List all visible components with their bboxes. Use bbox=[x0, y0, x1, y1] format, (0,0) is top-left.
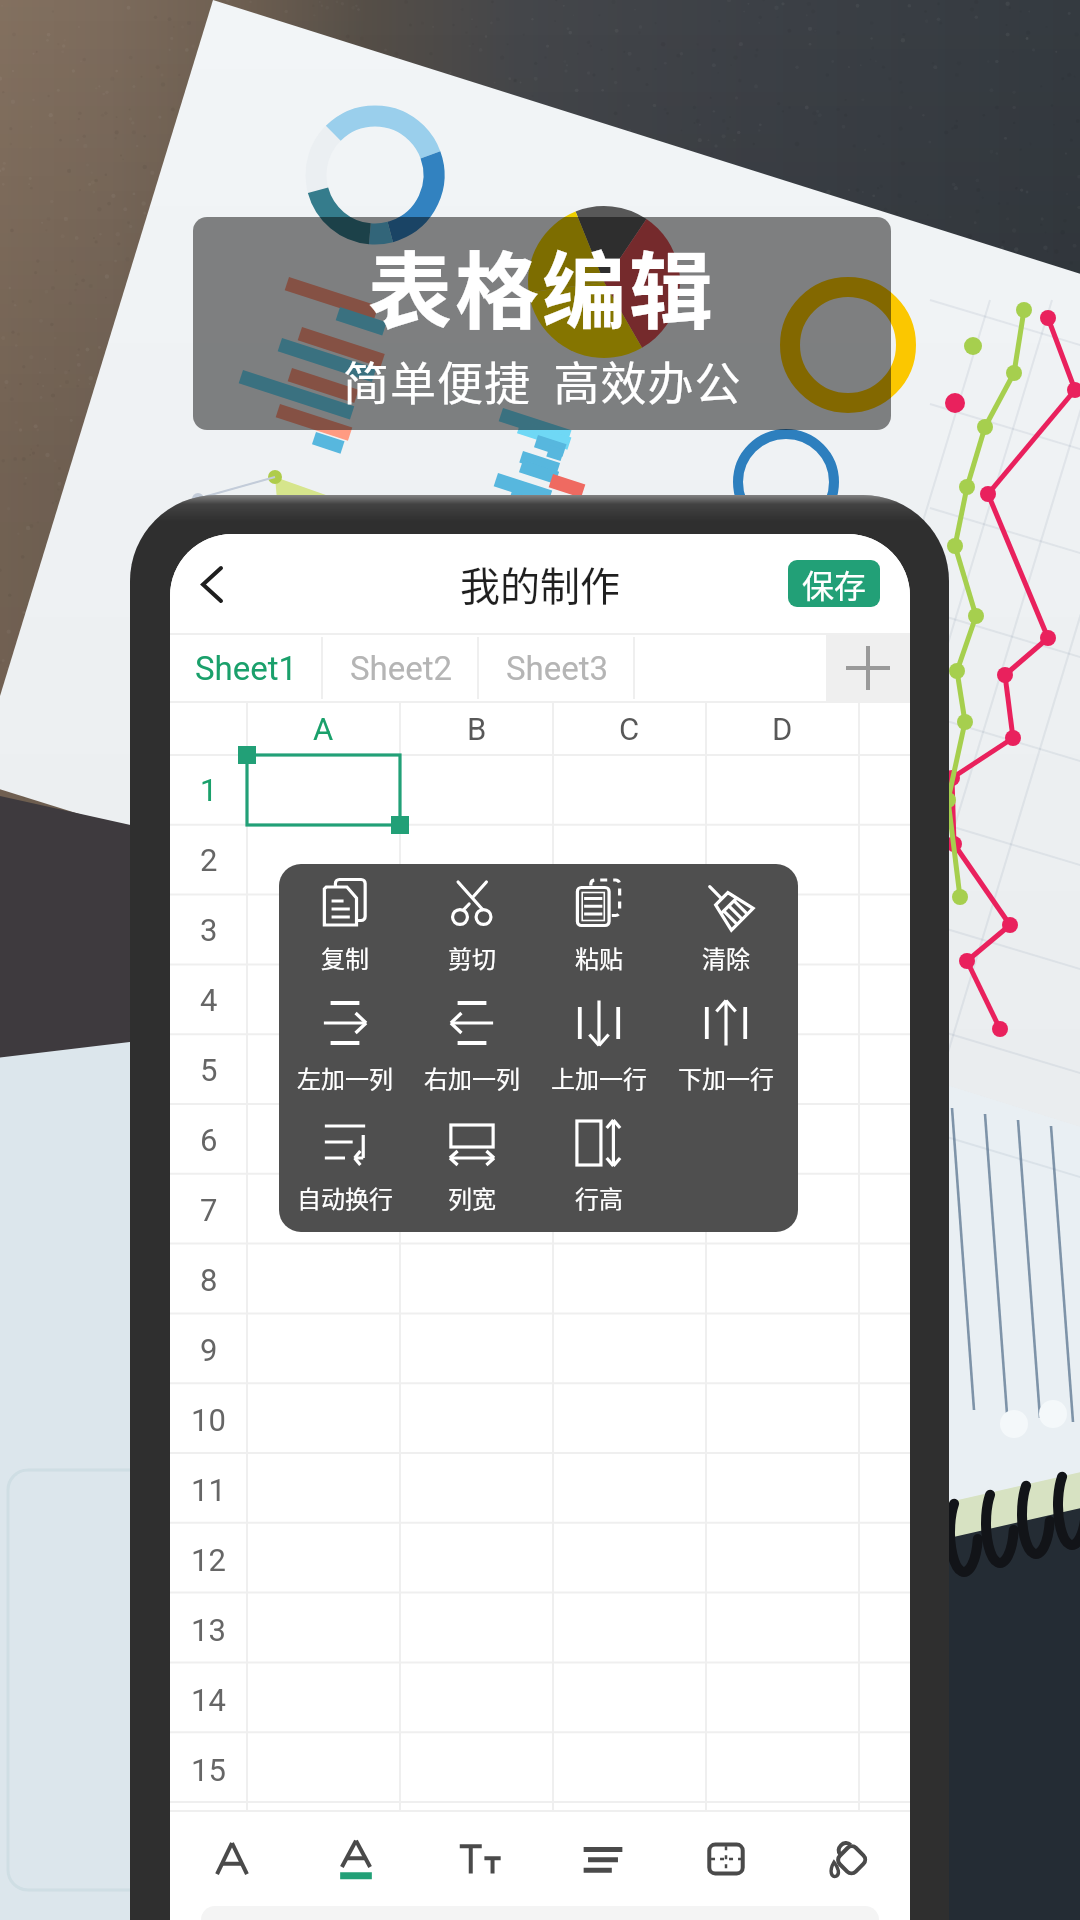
button[interactable]: 自动换行 bbox=[281, 1118, 408, 1232]
button[interactable]: Sheet2 bbox=[323, 633, 479, 703]
button[interactable]: 右加一列 bbox=[408, 998, 535, 1118]
staticText: A bbox=[313, 711, 334, 747]
staticText: 14 bbox=[191, 1682, 226, 1718]
staticText: B bbox=[467, 711, 487, 747]
staticText: 左加一列 bbox=[297, 1060, 393, 1095]
staticText: 3 bbox=[200, 912, 218, 948]
staticText: 列宽 bbox=[448, 1180, 496, 1215]
button[interactable]: Font size bbox=[418, 1812, 541, 1906]
staticText: 右加一列 bbox=[424, 1060, 520, 1095]
button[interactable]: Fill colour bbox=[787, 1812, 910, 1906]
staticText: 11 bbox=[191, 1472, 226, 1508]
staticText: 6 bbox=[200, 1122, 218, 1158]
staticText: 简单便捷 高效办公 bbox=[343, 347, 742, 414]
button[interactable]: 左加一列 bbox=[281, 998, 408, 1118]
button[interactable]: Sheet1 bbox=[170, 633, 323, 703]
staticText: 清除 bbox=[702, 940, 750, 975]
staticText: 表格编辑 bbox=[368, 225, 717, 347]
staticText: 剪切 bbox=[448, 940, 496, 975]
staticText: 7 bbox=[200, 1192, 218, 1228]
staticText: 上加一行 bbox=[551, 1060, 647, 1095]
button[interactable]: 下加一行 bbox=[662, 998, 789, 1118]
staticText: 下加一行 bbox=[678, 1060, 774, 1095]
button[interactable]: 清除 bbox=[662, 878, 789, 998]
staticText: 粘贴 bbox=[575, 940, 623, 975]
staticText: C bbox=[619, 711, 640, 747]
button[interactable]: 剪切 bbox=[408, 878, 535, 998]
button[interactable]: 行高 bbox=[535, 1118, 662, 1232]
staticText: Sheet1 bbox=[195, 649, 298, 688]
button[interactable]: Back bbox=[178, 545, 246, 623]
button[interactable]: Alignment bbox=[541, 1812, 664, 1906]
staticText: 行高 bbox=[575, 1180, 623, 1215]
staticText: D bbox=[772, 711, 793, 747]
staticText: 9 bbox=[200, 1332, 218, 1368]
staticText: 5 bbox=[200, 1052, 218, 1088]
button[interactable]: 粘贴 bbox=[535, 878, 662, 998]
button[interactable]: Add sheet bbox=[826, 633, 910, 703]
staticText: 8 bbox=[200, 1262, 218, 1298]
button[interactable]: Borders bbox=[664, 1812, 787, 1906]
staticText: 4 bbox=[200, 982, 218, 1018]
button[interactable]: Sheet3 bbox=[479, 633, 635, 703]
staticText: 我的制作 bbox=[460, 555, 620, 613]
staticText: Sheet2 bbox=[350, 649, 453, 688]
staticText: 2 bbox=[200, 842, 218, 878]
staticText: Sheet3 bbox=[506, 649, 609, 688]
button[interactable]: 复制 bbox=[281, 878, 408, 998]
staticText: 10 bbox=[191, 1402, 226, 1438]
staticText: 1 bbox=[200, 772, 218, 808]
staticText: 保存 bbox=[802, 561, 867, 607]
button[interactable]: 保存 bbox=[788, 560, 880, 607]
button[interactable]: Text colour bbox=[294, 1812, 418, 1906]
button[interactable]: Font bbox=[170, 1812, 294, 1906]
staticText: 15 bbox=[191, 1752, 226, 1788]
button[interactable]: 上加一行 bbox=[535, 998, 662, 1118]
button[interactable]: 列宽 bbox=[408, 1118, 535, 1232]
staticText: 12 bbox=[191, 1542, 226, 1578]
staticText: 13 bbox=[191, 1612, 226, 1648]
staticText: 复制 bbox=[321, 940, 369, 975]
staticText: 自动换行 bbox=[297, 1180, 393, 1215]
